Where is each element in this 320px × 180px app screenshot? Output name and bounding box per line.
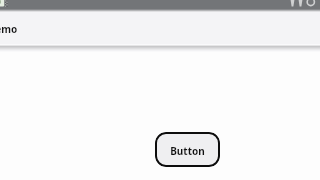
staticText: Button	[170, 144, 205, 158]
button[interactable]: Button	[155, 132, 220, 167]
staticText: Demo	[0, 22, 18, 36]
